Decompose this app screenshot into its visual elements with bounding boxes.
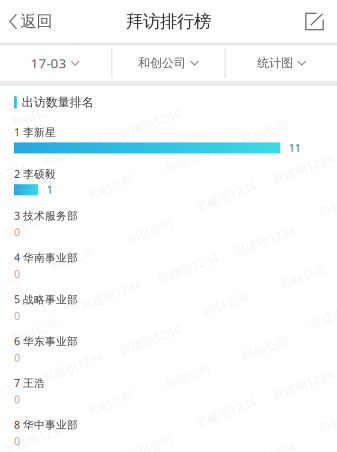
staticText: 和创公司	[49, 252, 97, 266]
staticText: 2 李硕毅	[14, 167, 56, 181]
staticText: 和创公司	[87, 180, 135, 194]
staticText: 郭建明1234	[271, 161, 335, 177]
staticText: 8 华中事业部	[14, 417, 78, 432]
staticText: 和创公司	[241, 342, 289, 356]
staticText: 郭建明1234	[0, 170, 28, 186]
staticText: 和创公司	[11, 108, 59, 122]
button[interactable]: 17-03	[0, 45, 111, 81]
button[interactable]: 分享	[292, 0, 337, 43]
staticText: 3 技术服务部	[14, 208, 78, 223]
staticText: 和创公司	[11, 324, 59, 338]
staticText: 1 李新星	[14, 125, 56, 139]
staticText: 4 华南事业部	[14, 250, 78, 264]
staticText: 郭建明1234	[271, 377, 335, 393]
staticText: 出访数量排名	[22, 95, 94, 110]
staticText: 0	[14, 309, 20, 323]
staticText: 0	[14, 392, 20, 406]
button[interactable]: 返回	[0, 0, 64, 43]
staticText: 5 战略事业部	[14, 292, 78, 306]
staticText: 和创公司	[202, 297, 250, 311]
staticText: 拜访排行榜	[126, 11, 211, 32]
staticText: 和创公司	[126, 441, 174, 452]
staticText: 和创公司	[164, 369, 212, 383]
staticText: 郭建明1234	[118, 332, 182, 348]
staticText: 0	[14, 267, 20, 281]
staticText: 0	[14, 225, 20, 239]
staticText: 郭建明1234	[41, 359, 105, 375]
staticText: 0	[14, 434, 20, 448]
staticText: 和创公司	[164, 153, 212, 167]
staticText: 郭建明1234	[194, 404, 258, 420]
staticText: 0	[14, 350, 20, 365]
staticText: 和创公司	[317, 414, 337, 428]
staticText: 和创公司	[87, 396, 135, 410]
staticText: 郭建明1234	[3, 215, 67, 231]
staticText: 郭建明1234	[194, 188, 258, 204]
staticText: 郭建明1234	[3, 431, 67, 447]
staticText: 1	[47, 183, 53, 197]
staticText: 和创公司	[126, 225, 174, 239]
staticText: 郭建明1234	[156, 260, 220, 276]
staticText: 和创公司	[317, 198, 337, 212]
staticText: 11	[289, 141, 301, 155]
staticText: 郭建明1234	[118, 116, 182, 132]
staticText: 郭建明1234	[79, 287, 143, 303]
staticText: 和创公司	[138, 56, 186, 70]
button[interactable]: 和创公司	[112, 45, 225, 81]
staticText: 郭建明1234	[41, 143, 105, 159]
staticText: 7 王浩	[14, 376, 45, 390]
staticText: 郭建明1234	[0, 386, 28, 402]
button[interactable]: 统计图	[226, 45, 337, 81]
staticText: 返回	[20, 12, 52, 31]
staticText: 和创公司	[241, 126, 289, 140]
staticText: 17-03	[31, 54, 67, 72]
staticText: 和创公司	[279, 270, 327, 284]
staticText: 6 华东事业部	[14, 334, 78, 348]
staticText: 郭建明1234	[233, 233, 297, 249]
staticText: 统计图	[257, 56, 293, 70]
